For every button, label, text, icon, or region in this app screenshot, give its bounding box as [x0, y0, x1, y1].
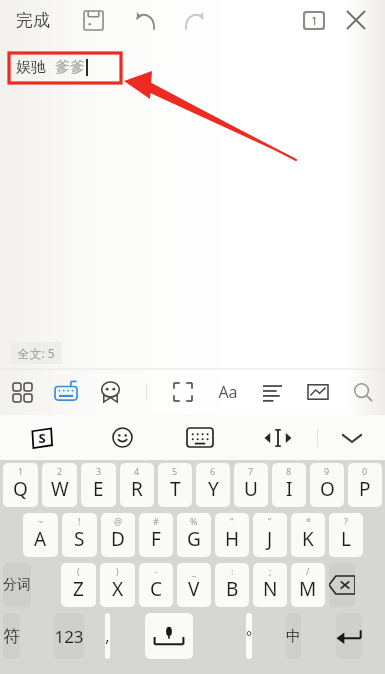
button[interactable]: Close	[337, 1, 375, 39]
staticText: 中	[286, 627, 301, 646]
staticText: B	[226, 576, 239, 602]
button[interactable]: 3	[81, 463, 116, 507]
button[interactable]: Tool	[160, 369, 205, 415]
button[interactable]: %	[177, 513, 211, 557]
button[interactable]: ~	[23, 513, 58, 557]
button[interactable]: Tool	[340, 369, 385, 415]
button[interactable]: Keyboard layout	[161, 415, 239, 460]
staticText: @	[114, 515, 123, 527]
button[interactable]: ;	[253, 563, 287, 607]
button[interactable]: Key	[329, 563, 355, 607]
button[interactable]: 0	[348, 463, 382, 507]
button[interactable]: Key	[336, 613, 362, 659]
staticText: )	[116, 565, 119, 577]
button[interactable]: :	[215, 563, 249, 607]
staticText: Aa	[218, 381, 238, 403]
button[interactable]: 分词	[3, 563, 31, 607]
staticText: 9	[324, 465, 330, 477]
staticText: D	[111, 526, 125, 552]
staticText: L	[341, 526, 351, 552]
button[interactable]: Tool	[44, 369, 88, 415]
staticText: 爹爹	[55, 58, 85, 77]
staticText: 1	[311, 13, 318, 28]
staticText: ”	[268, 515, 272, 527]
staticText: 7	[248, 465, 254, 477]
staticText: 5	[172, 465, 178, 477]
button[interactable]: #	[139, 513, 173, 557]
staticText: C	[150, 576, 163, 602]
button[interactable]: 7	[234, 463, 268, 507]
staticText: %	[190, 515, 198, 527]
staticText: F	[151, 526, 161, 552]
button[interactable]: 符	[3, 613, 20, 659]
staticText: “	[230, 515, 234, 527]
button[interactable]: 4	[120, 463, 154, 507]
staticText: 符	[3, 626, 20, 647]
button[interactable]: °	[246, 613, 252, 659]
button[interactable]: !	[62, 513, 97, 557]
button[interactable]: 8	[272, 463, 306, 507]
button[interactable]: ?	[329, 513, 363, 557]
staticText: S	[74, 526, 85, 552]
button[interactable]: 5	[158, 463, 192, 507]
button[interactable]: 9	[310, 463, 344, 507]
button[interactable]: Tool	[0, 369, 44, 415]
button[interactable]: /	[291, 563, 325, 607]
button[interactable]: Key	[145, 613, 193, 659]
staticText: U	[244, 476, 258, 502]
staticText: H	[225, 526, 240, 552]
staticText: (	[77, 565, 80, 577]
staticText: 0	[362, 465, 368, 477]
button[interactable]: Tabs	[303, 11, 325, 30]
button[interactable]: 123	[54, 613, 84, 659]
button[interactable]: Emoji	[83, 415, 161, 460]
button[interactable]: )	[100, 563, 135, 607]
button[interactable]: Tool	[250, 369, 295, 415]
button[interactable]: ,	[105, 613, 110, 659]
button[interactable]: Tool	[205, 369, 250, 415]
button[interactable]: *	[291, 513, 325, 557]
staticText: 4	[134, 465, 140, 477]
button[interactable]: Hide keyboard	[318, 415, 385, 460]
staticText: V	[188, 576, 200, 602]
button[interactable]: -	[139, 563, 173, 607]
button[interactable]: (	[61, 563, 96, 607]
button[interactable]: 完成	[10, 6, 56, 35]
button[interactable]: “	[215, 513, 249, 557]
staticText: S	[38, 429, 46, 447]
staticText: 1	[18, 465, 24, 477]
staticText: R	[131, 476, 143, 502]
button[interactable]: Redo	[177, 2, 213, 38]
staticText: 3	[96, 465, 102, 477]
button[interactable]: 全文: 5	[17, 345, 55, 361]
button[interactable]: @	[101, 513, 135, 557]
button[interactable]: Sogou menu	[0, 415, 83, 460]
button[interactable]: 6	[196, 463, 230, 507]
button[interactable]: Undo	[127, 2, 163, 38]
staticText: J	[267, 526, 273, 552]
staticText: 6	[210, 465, 216, 477]
button[interactable]: Save	[76, 3, 110, 37]
staticText: 全文: 5	[17, 345, 55, 361]
staticText: 分词	[3, 576, 31, 594]
staticText: 2	[57, 465, 63, 477]
button[interactable]: 2	[42, 463, 77, 507]
staticText: _	[192, 565, 196, 577]
button[interactable]: Key	[286, 613, 301, 659]
button[interactable]: Tool	[88, 369, 132, 415]
button[interactable]: ”	[253, 513, 287, 557]
staticText: ?	[344, 515, 348, 527]
staticText: ;	[269, 565, 272, 577]
staticText: :	[231, 565, 234, 577]
button[interactable]: Move cursor	[239, 415, 317, 460]
staticText: Y	[208, 476, 219, 502]
staticText: Z	[73, 576, 84, 602]
staticText: Q	[13, 476, 28, 502]
staticText: O	[320, 476, 335, 502]
button[interactable]: 1	[3, 463, 38, 507]
button[interactable]: _	[177, 563, 211, 607]
staticText: 123	[54, 625, 84, 648]
button[interactable]: Tool	[295, 369, 340, 415]
staticText: 8	[286, 465, 292, 477]
staticText: M	[299, 576, 317, 602]
